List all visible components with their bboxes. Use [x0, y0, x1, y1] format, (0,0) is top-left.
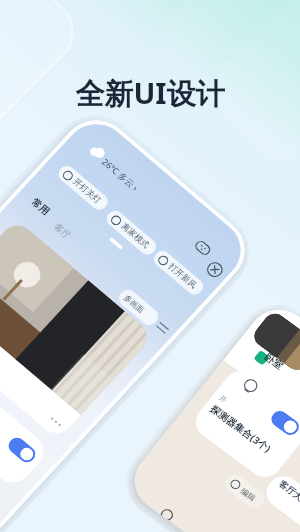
- staticText: 编辑: [238, 485, 258, 504]
- button[interactable]: Toggle switch: [5, 434, 39, 466]
- button[interactable]: [185, 359, 300, 489]
- staticText: 开: [217, 393, 229, 405]
- button[interactable]: 编辑: [220, 469, 269, 513]
- staticText: 多画面: [122, 292, 146, 315]
- button[interactable]: [258, 465, 300, 532]
- other: Remote control: [191, 237, 214, 259]
- staticText: 常用: [29, 196, 52, 218]
- staticText: 26℃ 多云 ›: [100, 155, 141, 193]
- staticText: 客厅大灯: [276, 476, 300, 509]
- button[interactable]: [248, 306, 300, 377]
- other: More: [153, 318, 172, 337]
- button[interactable]: [0, 219, 154, 440]
- staticText: 离家模式: [119, 221, 151, 251]
- button[interactable]: 多画面: [115, 286, 162, 328]
- staticText: 卧室: [261, 350, 286, 373]
- button[interactable]: Toggle switch: [0, 329, 51, 490]
- button[interactable]: 打开新风: [150, 248, 207, 298]
- staticText: 探测器集合(3个): [207, 398, 275, 459]
- staticText: 打开新风: [166, 261, 199, 291]
- button[interactable]: Toggle switch: [267, 406, 300, 440]
- button[interactable]: 离家模式: [103, 207, 159, 258]
- button[interactable]: 开灯关灯: [55, 163, 111, 213]
- other: Add device: [203, 259, 226, 280]
- staticText: 全新UI设计: [0, 73, 300, 113]
- staticText: 开灯关灯: [70, 176, 103, 206]
- staticText: 客厅: [52, 221, 73, 240]
